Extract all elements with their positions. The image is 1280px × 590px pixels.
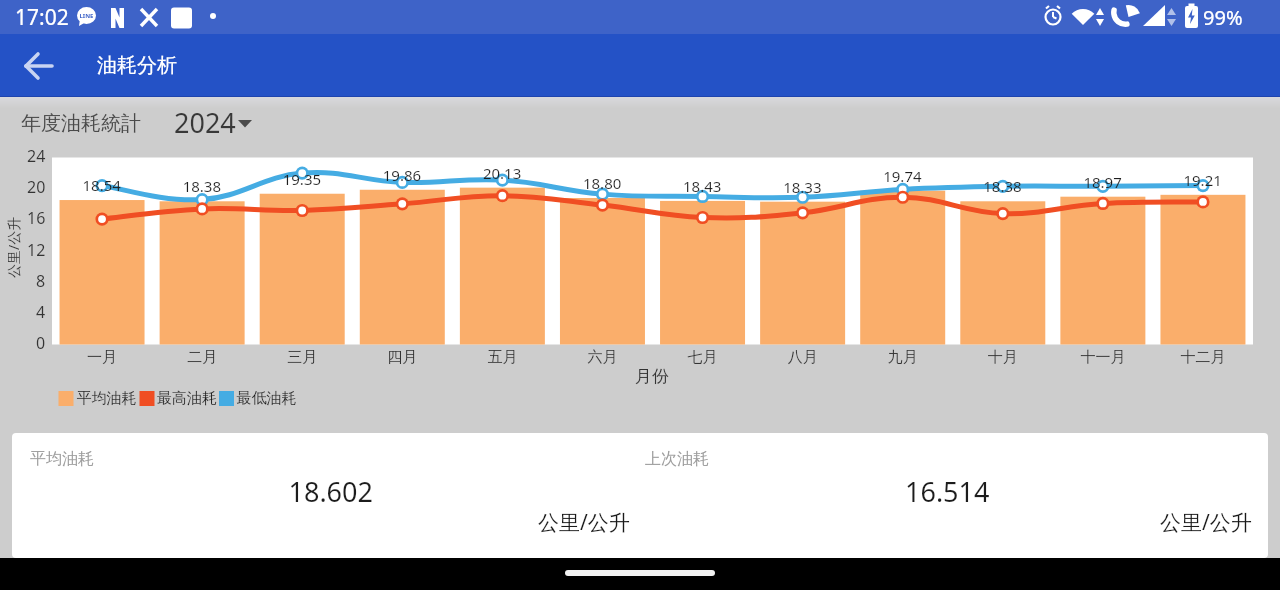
button[interactable] <box>160 104 270 144</box>
button[interactable] <box>0 558 1280 590</box>
button[interactable] <box>16 43 62 89</box>
